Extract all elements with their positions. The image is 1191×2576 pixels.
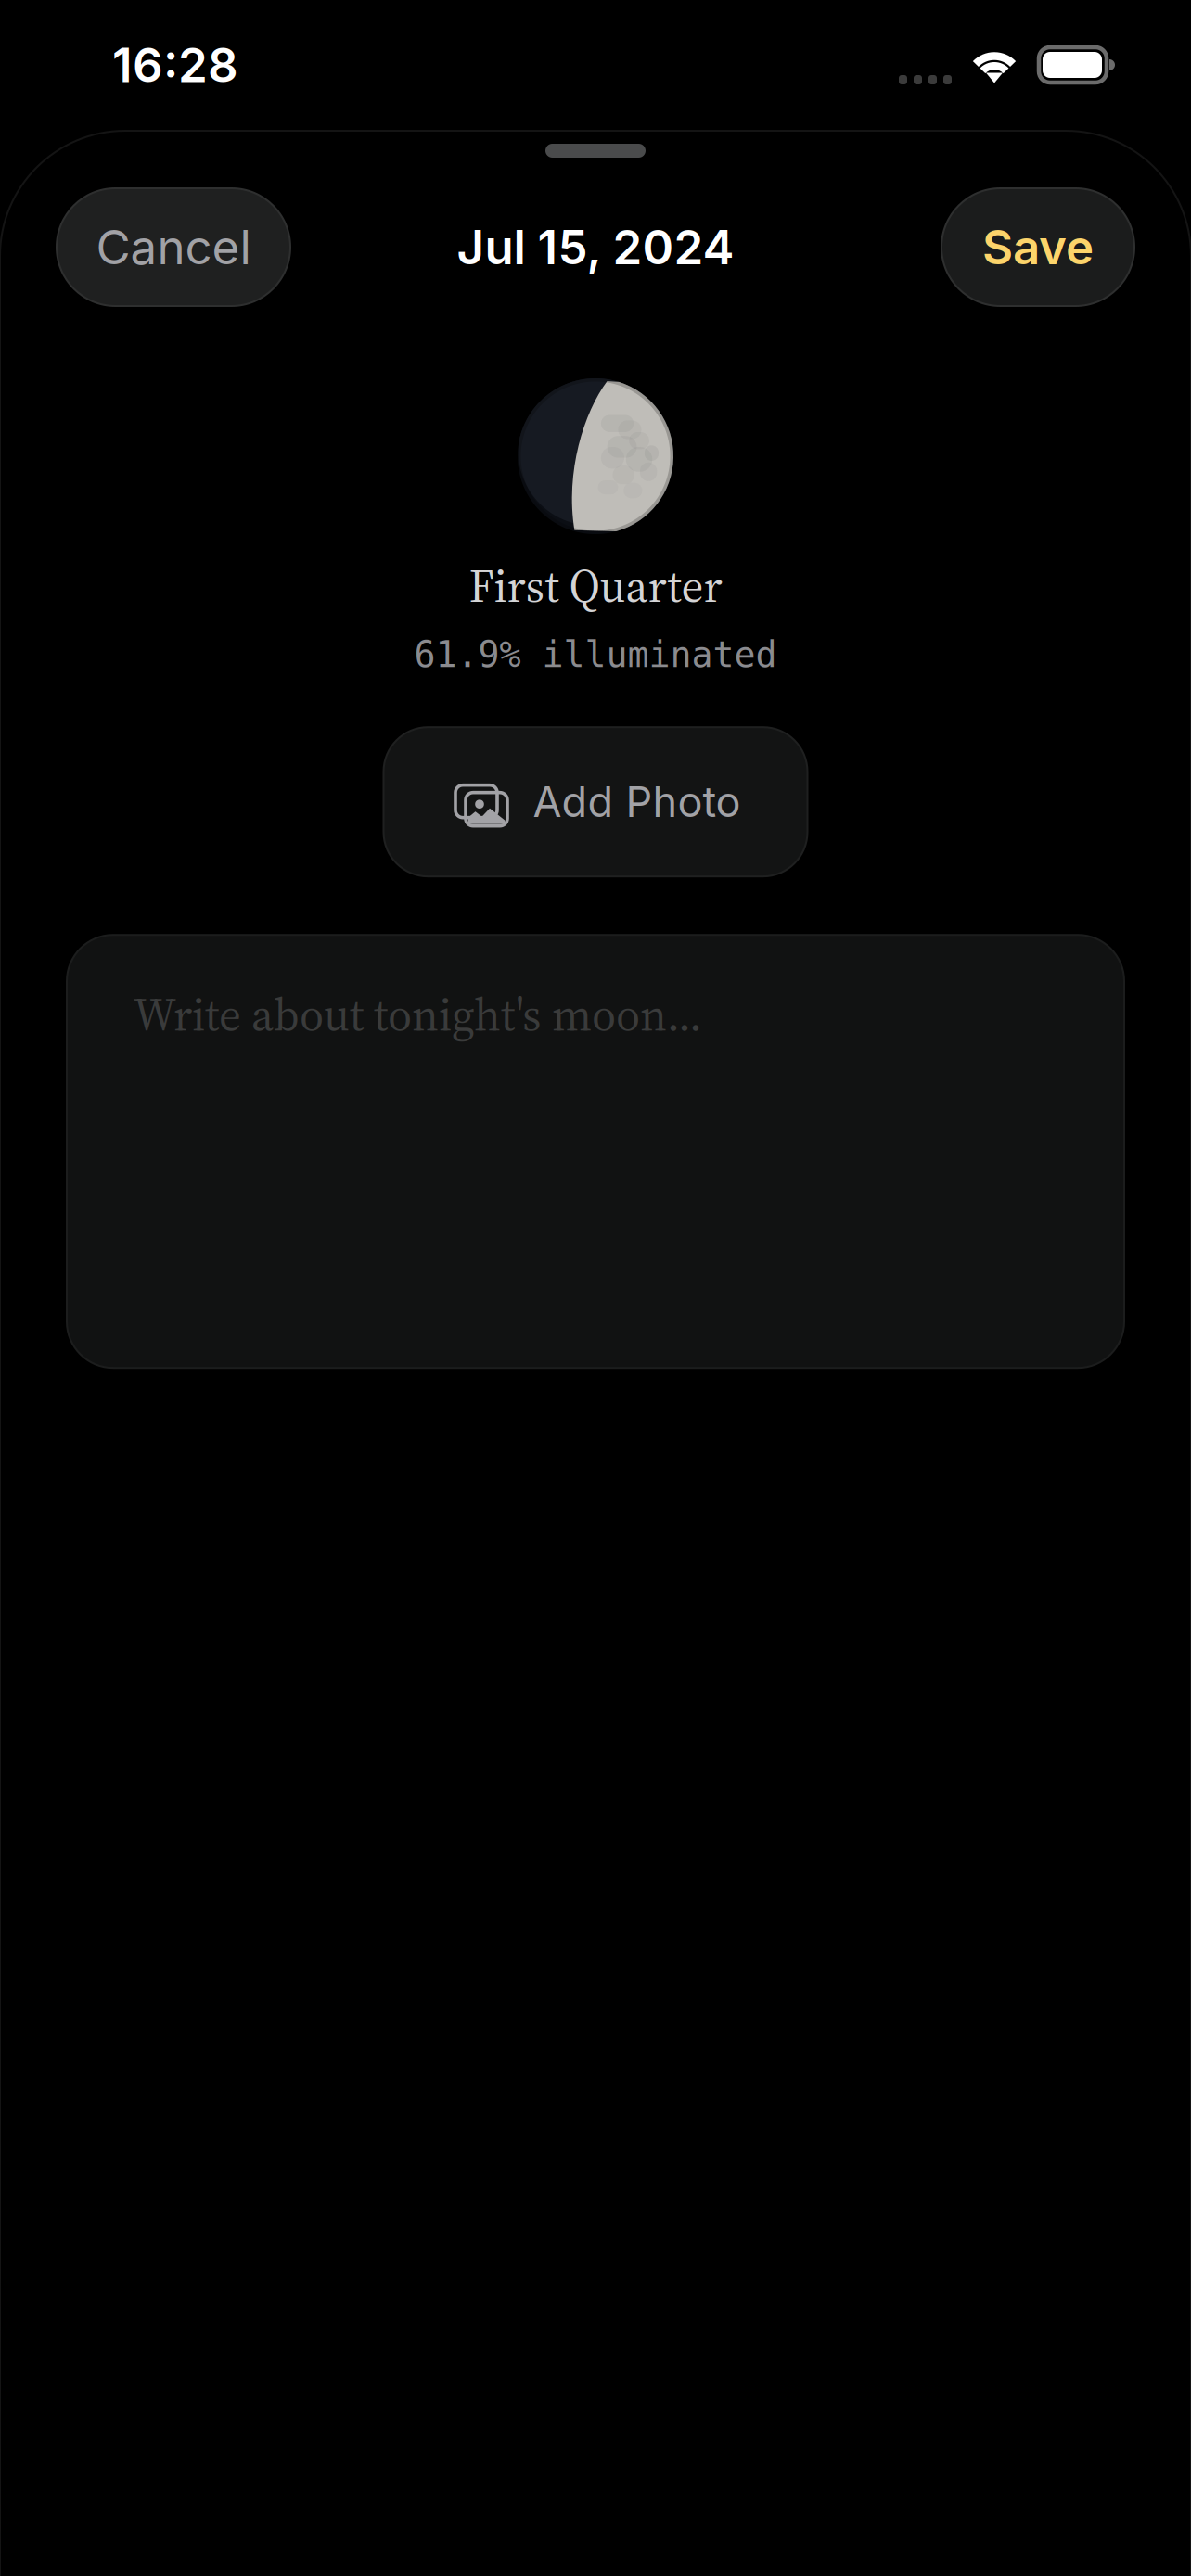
staticText: Jul 15, 2024 [457, 218, 734, 276]
button[interactable]: Add Photo [384, 727, 807, 876]
staticText: First Quarter [469, 555, 722, 617]
staticText: Save [982, 218, 1094, 276]
button[interactable]: Cancel [57, 188, 290, 306]
staticText: 61.9% illuminated [414, 634, 777, 675]
staticText: 16:28 [112, 36, 238, 93]
staticText: Write about tonight's moon... [134, 983, 702, 1046]
staticText: Add Photo [533, 777, 741, 827]
button[interactable]: Save [941, 188, 1134, 306]
staticText: Cancel [96, 218, 251, 276]
